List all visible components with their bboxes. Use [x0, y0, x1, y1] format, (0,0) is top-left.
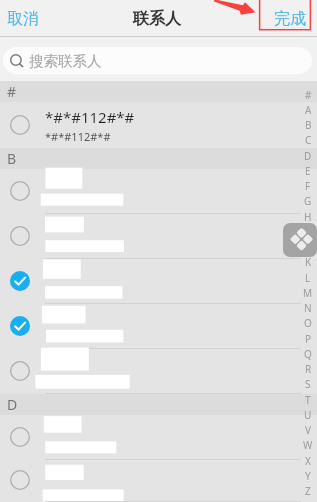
staticText: T — [305, 393, 311, 407]
staticText: # — [7, 82, 17, 101]
staticText: C — [305, 133, 312, 147]
staticText: 完成 — [274, 9, 306, 29]
staticText: W — [303, 438, 313, 452]
staticText: A — [305, 103, 312, 117]
staticText: *#*#112#*# — [45, 129, 111, 144]
button[interactable] — [0, 415, 317, 460]
button[interactable] — [0, 349, 317, 394]
button[interactable]: Alphabet index — [299, 0, 317, 502]
staticText: B — [7, 149, 17, 168]
staticText: J — [307, 240, 310, 254]
staticText: S — [305, 377, 311, 391]
button[interactable]: *#*#112#*# — [0, 102, 317, 148]
button[interactable] — [0, 460, 317, 502]
staticText: E — [305, 164, 311, 178]
staticText: L — [305, 271, 311, 285]
staticText: H — [304, 210, 312, 224]
staticText: # — [305, 88, 312, 102]
staticText: P — [305, 332, 312, 346]
staticText: V — [305, 423, 311, 437]
staticText: 搜索联系人 — [29, 52, 102, 70]
staticText: *#*#112#*# — [45, 107, 135, 127]
staticText: O — [304, 316, 312, 330]
staticText: F — [305, 179, 311, 193]
button[interactable]: Assistive touch — [283, 223, 317, 257]
staticText: Z — [305, 484, 311, 498]
staticText: D — [304, 149, 312, 163]
staticText: G — [304, 194, 312, 208]
staticText: 联系人 — [133, 9, 181, 29]
button[interactable] — [0, 259, 317, 304]
button[interactable] — [0, 169, 317, 214]
staticText: Q — [304, 347, 312, 361]
button[interactable] — [0, 214, 317, 259]
staticText: 取消 — [7, 9, 39, 29]
staticText: X — [305, 454, 311, 468]
button[interactable] — [0, 304, 317, 349]
staticText: U — [304, 408, 312, 422]
staticText: N — [304, 301, 312, 315]
staticText: Y — [305, 469, 311, 483]
staticText: I — [306, 225, 310, 239]
staticText: M — [303, 286, 313, 300]
staticText: D — [7, 395, 18, 414]
staticText: R — [305, 362, 312, 376]
staticText: B — [305, 118, 312, 132]
button[interactable]: 取消 — [3, 4, 43, 34]
button[interactable]: 完成 — [270, 4, 310, 34]
staticText: K — [305, 255, 312, 269]
button[interactable]: 搜索联系人 — [3, 47, 312, 74]
